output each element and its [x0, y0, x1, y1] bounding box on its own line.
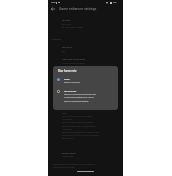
staticText: or custom with unlimited rate of 120% or [64, 96, 94, 98]
button[interactable]: Back [49, 5, 57, 13]
staticText: By last used [62, 23, 71, 25]
staticText: Max frame rate [58, 69, 77, 72]
staticText: File format [62, 46, 72, 49]
staticText: Setting the resolution or maximum frame … [53, 163, 96, 165]
staticText: Records at 60 fps max [64, 81, 80, 83]
staticText: specifications. [62, 128, 73, 130]
staticText: Default is recommended when recording fo… [62, 131, 100, 133]
staticText: time. When 60 I record is set, this will… [62, 134, 100, 136]
staticText: your device performance or the app setti… [62, 125, 97, 127]
staticText: Interval change [62, 155, 74, 157]
staticText: 10:07 [51, 1, 56, 3]
staticText: go to to Default. [62, 137, 74, 139]
staticText: recorded files. [62, 118, 73, 120]
staticText: default [62, 112, 68, 114]
staticText: 57% [113, 1, 117, 3]
button[interactable]: Default [53, 77, 118, 88]
staticText: Max frame rate [62, 108, 76, 111]
button[interactable]: Sort apps [48, 19, 123, 31]
button[interactable]: File format [48, 46, 123, 54]
staticText: Game enhancer settings [59, 7, 97, 11]
staticText: Sort apps listed in My games [62, 26, 83, 28]
staticText: Refresh change [62, 152, 76, 155]
staticText: Records at 120 fps max but the frame mod… [64, 93, 96, 95]
staticText: High frame rate [64, 90, 77, 92]
staticText: Screenshot [52, 38, 61, 40]
staticText: Allow the settings to be applied [62, 62, 85, 64]
staticText: Hide gaming notifications [62, 58, 85, 61]
staticText: higher on Performance preferred. [64, 100, 89, 102]
button[interactable]: High frame rate [53, 89, 118, 108]
staticText: Default [64, 78, 70, 80]
staticText: Sort apps [62, 19, 71, 22]
staticText: This is the frame rate that will be appl… [62, 115, 94, 117]
staticText: Max FPS may not be reached depending on [62, 121, 94, 123]
staticText: JPEG [62, 50, 66, 52]
button[interactable]: Hide gaming notifications [48, 58, 123, 66]
staticText: increase the size of your files. [53, 166, 75, 168]
